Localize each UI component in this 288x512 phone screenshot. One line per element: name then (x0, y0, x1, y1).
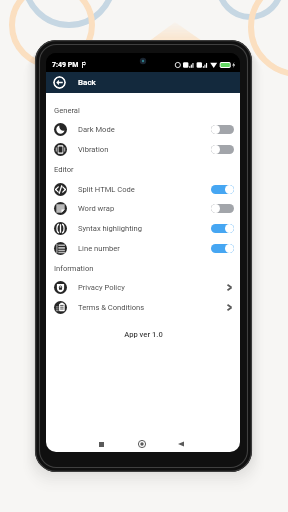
button[interactable]: Toggle (211, 125, 234, 134)
staticText: Editor (54, 165, 74, 174)
button[interactable]: Word wrap (46, 198, 240, 218)
staticText: Vibration (78, 145, 211, 154)
staticText: Privacy Policy (78, 283, 225, 292)
button[interactable]: Line number (46, 238, 240, 258)
staticText: Terms & Conditions (78, 303, 225, 312)
staticText: Line number (78, 244, 211, 253)
button[interactable]: Home (134, 436, 150, 452)
button[interactable]: Terms & Conditions (46, 297, 240, 317)
staticText: Word wrap (78, 204, 211, 213)
button[interactable]: Back (173, 436, 189, 452)
button[interactable]: Toggle (211, 204, 234, 213)
button[interactable]: Toggle (211, 244, 234, 253)
button[interactable]: Toggle (211, 224, 234, 233)
button[interactable]: Privacy Policy (46, 277, 240, 297)
staticText: Information (54, 264, 94, 273)
button[interactable]: Back (53, 76, 66, 89)
staticText: Syntax highlighting (78, 224, 211, 233)
staticText: Back (78, 78, 96, 87)
button[interactable]: Recents (93, 436, 109, 452)
staticText: Dark Mode (78, 125, 211, 134)
staticText: App ver 1.0 (124, 330, 163, 339)
button[interactable]: Toggle (211, 185, 234, 194)
button[interactable]: Split HTML Code (46, 179, 240, 199)
button[interactable]: Syntax highlighting (46, 218, 240, 238)
button[interactable]: Dark Mode (46, 119, 240, 139)
staticText: 7:49 PM (52, 61, 79, 69)
staticText: General (54, 106, 80, 115)
button[interactable]: Toggle (211, 145, 234, 154)
button[interactable]: Vibration (46, 139, 240, 159)
staticText: Split HTML Code (78, 185, 211, 194)
